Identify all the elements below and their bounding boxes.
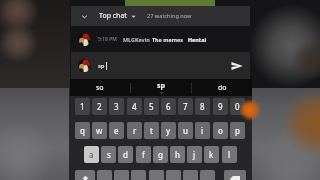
button[interactable]: t (144, 122, 159, 139)
button[interactable]: Key (114, 170, 129, 180)
button[interactable]: w (92, 122, 107, 139)
button[interactable]: r (127, 122, 142, 139)
staticText: 1 (80, 101, 85, 112)
staticText: 8 (200, 101, 205, 112)
staticText: 6 (166, 101, 171, 112)
staticText: s (107, 149, 111, 160)
button[interactable]: f (136, 146, 151, 163)
button[interactable]: k (204, 146, 219, 163)
button[interactable]: 5 (144, 98, 159, 115)
button[interactable]: Key (200, 170, 215, 180)
staticText: e (114, 125, 119, 136)
button[interactable]: Collapse chat (71, 6, 250, 26)
button[interactable]: d (118, 146, 133, 163)
button[interactable]: y (161, 122, 176, 139)
staticText: 3 (114, 101, 119, 112)
staticText: j (193, 149, 196, 160)
staticText: l (228, 149, 231, 160)
button[interactable]: a (84, 146, 99, 163)
staticText: f (142, 149, 145, 160)
other: Collapse chat (81, 13, 88, 20)
button[interactable]: g (153, 146, 168, 163)
staticText: 9 (218, 101, 223, 112)
staticText: 27 watching now (147, 12, 192, 20)
button[interactable]: Key (166, 170, 181, 180)
button[interactable]: l (222, 146, 237, 163)
staticText: r (133, 125, 137, 136)
button[interactable]: sp (98, 62, 107, 70)
button[interactable]: i (195, 122, 210, 139)
button[interactable]: 9 (213, 98, 228, 115)
staticText: sp (98, 62, 105, 70)
button[interactable]: Key (131, 170, 146, 180)
button[interactable]: 8 (195, 98, 210, 115)
staticText: d (123, 149, 128, 160)
staticText: MLGKevin (123, 36, 150, 43)
staticText: k (209, 149, 214, 160)
button[interactable]: so (70, 79, 130, 96)
staticText: 0 (235, 101, 240, 112)
button[interactable]: u (178, 122, 193, 139)
button[interactable]: h (170, 146, 185, 163)
staticText: so (96, 83, 104, 93)
staticText: do (218, 83, 227, 93)
staticText: p (235, 125, 240, 136)
staticText: 4 (132, 101, 137, 112)
button[interactable]: do (192, 79, 252, 96)
button[interactable]: 2 (92, 98, 107, 115)
staticText: h (175, 149, 180, 160)
staticText: u (183, 125, 188, 136)
button[interactable]: p (230, 122, 245, 139)
button[interactable]: 5:18 PM (71, 26, 250, 52)
staticText: 5 (149, 101, 154, 112)
staticText: q (80, 125, 85, 136)
button[interactable]: 7 (178, 98, 193, 115)
staticText: 7 (183, 101, 188, 112)
button[interactable]: 4 (127, 98, 142, 115)
staticText: i (201, 125, 204, 136)
staticText: Hentai (188, 36, 207, 43)
button[interactable]: Key (183, 170, 198, 180)
button[interactable]: q (75, 122, 90, 139)
button[interactable]: j (187, 146, 202, 163)
button[interactable]: s (101, 146, 116, 163)
button[interactable]: Key (149, 170, 164, 180)
button[interactable]: Key (97, 170, 112, 180)
staticText: o (218, 125, 223, 136)
button[interactable]: Send message (227, 56, 247, 76)
button[interactable]: Shift (75, 170, 95, 180)
button[interactable]: e (109, 122, 124, 139)
button[interactable]: Backspace (224, 170, 246, 180)
button[interactable]: 6 (161, 98, 176, 115)
button[interactable]: o (213, 122, 228, 139)
button[interactable]: 3 (109, 98, 124, 115)
button[interactable]: sp (131, 79, 191, 96)
staticText: a (89, 149, 94, 160)
staticText: 2 (97, 101, 102, 112)
staticText: y (166, 125, 171, 136)
staticText: g (158, 149, 163, 160)
staticText: t (150, 125, 153, 136)
button[interactable]: 1 (75, 98, 90, 115)
staticText: 5:18 PM (98, 36, 117, 43)
staticText: sp (157, 81, 165, 91)
staticText: The memes (152, 36, 183, 43)
staticText: w (96, 125, 103, 136)
button[interactable]: 0 (230, 98, 245, 115)
staticText: Top chat (99, 11, 127, 21)
